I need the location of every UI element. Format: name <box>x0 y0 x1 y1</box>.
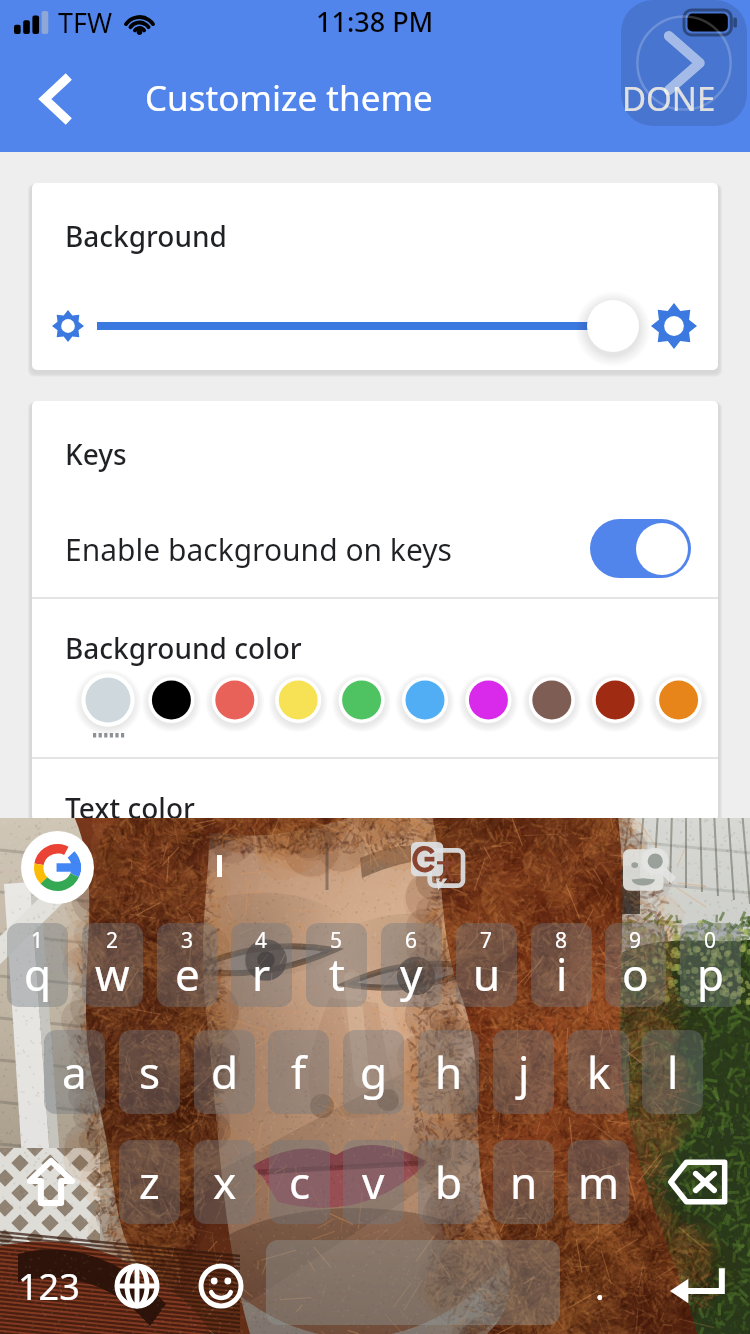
staticText: w <box>95 944 130 1004</box>
button[interactable]: x <box>194 1140 255 1224</box>
staticText: 3 <box>181 926 194 955</box>
staticText: 6 <box>405 926 418 955</box>
button[interactable]: s <box>119 1030 180 1114</box>
staticText: Text color <box>65 789 195 821</box>
staticText: 9 <box>629 926 642 955</box>
staticText: d <box>211 1042 239 1102</box>
button[interactable]: Color 8 <box>549 669 612 731</box>
button[interactable]: n <box>493 1140 554 1224</box>
button[interactable]: z <box>119 1140 180 1224</box>
button[interactable]: Enable background on keys <box>590 519 691 578</box>
staticText: Background color <box>65 629 302 667</box>
staticText: e <box>175 944 200 1004</box>
staticText: Enable background on keys <box>65 529 452 570</box>
button[interactable]: Backspace <box>653 1140 743 1224</box>
staticText: a <box>62 1042 87 1102</box>
button[interactable]: t <box>306 923 367 1007</box>
button[interactable]: b <box>418 1140 479 1224</box>
button[interactable]: p <box>680 923 741 1007</box>
staticText: n <box>510 1152 538 1212</box>
button[interactable]: Assistive touch <box>621 0 747 126</box>
staticText: v <box>362 1152 385 1212</box>
staticText: . <box>595 1262 605 1311</box>
button[interactable]: Color 10 <box>675 669 718 731</box>
staticText: f <box>291 1042 307 1102</box>
staticText: z <box>139 1152 160 1212</box>
button[interactable]: Shift <box>6 1140 96 1224</box>
staticText: s <box>139 1042 161 1102</box>
staticText: l <box>667 1042 679 1102</box>
staticText: t <box>329 944 345 1004</box>
staticText: m <box>578 1152 620 1212</box>
button[interactable]: a <box>44 1030 105 1114</box>
staticText: j <box>518 1042 530 1102</box>
staticText: i <box>556 944 568 1004</box>
staticText: b <box>435 1152 463 1212</box>
staticText: g <box>360 1042 388 1102</box>
button[interactable]: Color 2 <box>171 669 234 731</box>
button[interactable]: Language <box>96 1244 178 1328</box>
button[interactable]: Back <box>22 66 88 132</box>
button[interactable]: Space <box>266 1240 560 1325</box>
staticText: 123 <box>18 1262 80 1311</box>
button[interactable]: . <box>570 1244 630 1328</box>
button[interactable]: Color 4 <box>297 669 360 731</box>
button[interactable]: Color 9 <box>612 669 675 731</box>
button[interactable]: q <box>7 923 68 1007</box>
staticText: Background <box>65 217 227 255</box>
staticText: 1 <box>31 926 44 955</box>
button[interactable]: f <box>268 1030 329 1114</box>
button[interactable]: Enter <box>655 1244 739 1328</box>
button[interactable]: i <box>531 923 592 1007</box>
button[interactable]: o <box>605 923 666 1007</box>
button[interactable]: e <box>157 923 218 1007</box>
staticText: Keys <box>65 435 127 473</box>
button[interactable]: y <box>381 923 442 1007</box>
button[interactable]: 123 <box>8 1244 90 1328</box>
staticText: 4 <box>255 926 268 955</box>
staticText: c <box>289 1152 311 1212</box>
staticText: k <box>587 1042 611 1102</box>
button[interactable]: Color 3 <box>234 669 297 731</box>
button[interactable]: DONE <box>618 72 720 125</box>
button[interactable]: r <box>231 923 292 1007</box>
button[interactable]: v <box>343 1140 404 1224</box>
staticText: 2 <box>106 926 119 955</box>
button[interactable]: Translate <box>411 842 463 894</box>
button[interactable]: c <box>269 1140 330 1224</box>
button[interactable]: Color 6 <box>423 669 486 731</box>
button[interactable]: Color 7 <box>486 669 549 731</box>
button[interactable]: d <box>194 1030 255 1114</box>
staticText: o <box>622 944 649 1004</box>
staticText: 11:38 PM <box>316 3 434 40</box>
button[interactable]: Emoji <box>180 1244 262 1328</box>
staticText: Customize theme <box>145 74 433 122</box>
button[interactable]: w <box>82 923 143 1007</box>
staticText: p <box>697 944 725 1004</box>
button[interactable]: j <box>493 1030 554 1114</box>
button[interactable]: Color 5 <box>360 669 423 731</box>
button[interactable]: k <box>568 1030 629 1114</box>
staticText: h <box>435 1042 463 1102</box>
staticText: q <box>24 944 52 1004</box>
staticText: 0 <box>704 926 717 955</box>
staticText: y <box>400 944 423 1004</box>
button[interactable]: Search stickers <box>623 844 675 896</box>
staticText: 5 <box>330 926 343 955</box>
staticText: r <box>252 944 271 1004</box>
button[interactable]: Color 1 <box>108 669 171 731</box>
button[interactable]: g <box>343 1030 404 1114</box>
button[interactable]: Google <box>21 831 94 904</box>
button[interactable]: h <box>418 1030 479 1114</box>
staticText: x <box>213 1152 237 1212</box>
staticText: TFW <box>58 4 113 41</box>
staticText: 7 <box>480 926 493 955</box>
button[interactable]: u <box>456 923 517 1007</box>
staticText: DONE <box>622 76 716 121</box>
button[interactable]: m <box>568 1140 629 1224</box>
staticText: 8 <box>555 926 568 955</box>
staticText: u <box>473 944 501 1004</box>
button[interactable]: l <box>642 1030 703 1114</box>
